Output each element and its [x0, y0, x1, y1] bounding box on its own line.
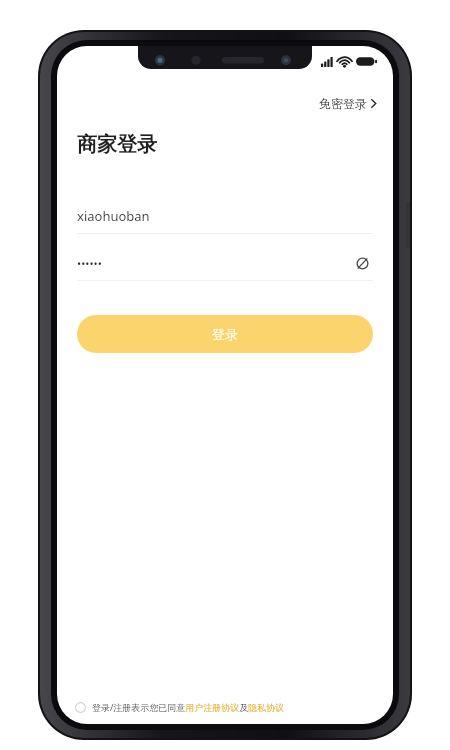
staticText: 登录/注册表示您已同意用户注册协议及隐私协议 — [92, 701, 285, 713]
staticText: 商家登录 — [77, 132, 157, 157]
staticText: xiaohuoban — [77, 207, 150, 225]
button[interactable]: 登录/注册表示您已同意用户注册协议及隐私协议 — [75, 701, 375, 713]
button[interactable]: 登录 — [77, 315, 373, 353]
staticText: •••••• — [77, 256, 351, 271]
button[interactable]: xiaohuoban — [77, 199, 373, 233]
button[interactable]: 免密登录 — [303, 90, 393, 117]
button[interactable]: Show password — [351, 252, 373, 274]
button[interactable]: •••••• — [77, 246, 373, 280]
staticText: 免密登录 — [319, 96, 367, 111]
staticText: 登录 — [212, 326, 238, 342]
